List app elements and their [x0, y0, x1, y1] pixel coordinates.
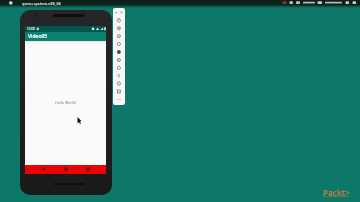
button[interactable] — [113, 8, 125, 105]
button[interactable]: Video05 — [25, 32, 106, 41]
staticText: qemu-system-x86_64 — [22, 1, 61, 6]
staticText: Packt> — [323, 187, 350, 198]
staticText: Hello World! — [55, 100, 77, 105]
staticText: 12:00 — [27, 27, 36, 31]
button[interactable] — [58, 165, 74, 174]
button[interactable] — [80, 165, 96, 174]
button[interactable]: Packt> — [323, 187, 350, 198]
button[interactable] — [35, 165, 51, 174]
staticText: Video05 — [28, 33, 48, 40]
